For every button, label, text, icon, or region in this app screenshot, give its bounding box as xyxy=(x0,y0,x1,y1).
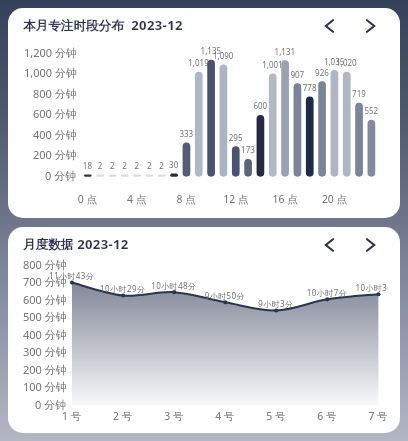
button[interactable]: Previous month xyxy=(317,233,341,257)
button[interactable]: Next month xyxy=(359,233,383,257)
button[interactable]: Previous month xyxy=(317,14,341,38)
button[interactable]: Next month xyxy=(359,14,383,38)
